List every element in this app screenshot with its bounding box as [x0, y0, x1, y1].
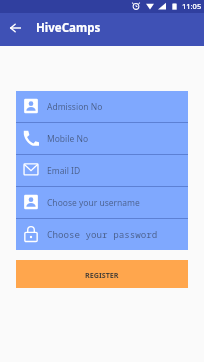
staticText: Choose your username: [47, 197, 140, 209]
staticText: HiveCamps: [36, 20, 101, 36]
staticText: Choose your password: [47, 228, 158, 241]
staticText: REGISTER: [85, 270, 119, 280]
button[interactable]: Mobile No: [16, 123, 188, 154]
button[interactable]: Admission No: [16, 91, 188, 122]
button[interactable]: Choose your username: [16, 187, 188, 218]
staticText: Email ID: [47, 165, 81, 177]
button[interactable]: REGISTER: [16, 260, 188, 288]
staticText: Mobile No: [47, 133, 89, 145]
button[interactable]: Email ID: [16, 155, 188, 186]
button[interactable]: Back: [5, 18, 25, 38]
staticText: Admission No: [47, 101, 103, 113]
staticText: 11:05: [182, 1, 202, 11]
button[interactable]: Choose your password: [16, 219, 188, 250]
